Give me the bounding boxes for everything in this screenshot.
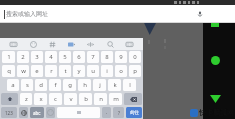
staticText: d bbox=[39, 81, 43, 89]
staticText: h bbox=[83, 81, 87, 89]
button[interactable]: Keyboard layout bbox=[8, 39, 19, 50]
staticText: l bbox=[129, 81, 131, 89]
staticText: s bbox=[26, 81, 29, 89]
button[interactable]: 123 bbox=[1, 107, 17, 118]
button[interactable]: Emoji bbox=[46, 107, 55, 118]
staticText: i bbox=[106, 67, 108, 75]
staticText: 0 bbox=[133, 53, 137, 61]
staticText: 7 bbox=[91, 53, 95, 61]
staticText: c bbox=[54, 95, 57, 103]
button[interactable]: Backspace bbox=[124, 93, 142, 105]
button[interactable]: Voice bbox=[85, 39, 96, 50]
button[interactable]: Space bbox=[57, 107, 100, 118]
staticText: . bbox=[106, 109, 108, 116]
button[interactable]: 7 bbox=[87, 51, 99, 63]
button[interactable]: s bbox=[21, 79, 33, 91]
staticText: r bbox=[50, 67, 53, 75]
staticText: 前往 bbox=[130, 110, 139, 116]
button[interactable]: o bbox=[115, 65, 127, 77]
button[interactable]: b bbox=[79, 93, 92, 105]
button[interactable]: h bbox=[78, 79, 91, 91]
button[interactable]: u bbox=[87, 65, 99, 77]
button[interactable]: 0 bbox=[129, 51, 141, 63]
staticText: e bbox=[35, 67, 39, 75]
staticText: 123 bbox=[5, 110, 13, 116]
button[interactable]: l bbox=[123, 79, 136, 91]
staticText: 搜索或输入网址 bbox=[6, 10, 48, 18]
button[interactable]: Voice search bbox=[195, 9, 205, 19]
button[interactable]: 搜索或输入网址 bbox=[0, 5, 235, 23]
button[interactable]: Shift bbox=[1, 93, 18, 105]
staticText: 快卡脑孤网 bbox=[199, 108, 234, 117]
button[interactable]: 1 bbox=[2, 51, 15, 63]
button[interactable]: Theme bbox=[66, 39, 77, 50]
staticText: g bbox=[68, 81, 72, 89]
staticText: m bbox=[113, 95, 119, 103]
button[interactable]: m bbox=[109, 93, 122, 105]
staticText: f bbox=[54, 81, 57, 89]
staticText: n bbox=[99, 95, 103, 103]
staticText: abc bbox=[33, 110, 41, 116]
staticText: k bbox=[113, 81, 117, 89]
staticText: u bbox=[91, 67, 95, 75]
staticText: 4 bbox=[49, 53, 53, 61]
button[interactable]: y bbox=[73, 65, 85, 77]
staticText: a bbox=[11, 81, 15, 89]
button[interactable]: Symbols bbox=[47, 39, 58, 50]
button[interactable]: q bbox=[2, 65, 15, 77]
staticText: v bbox=[69, 95, 73, 103]
staticText: 9 bbox=[119, 53, 123, 61]
button[interactable]: 2 bbox=[17, 51, 29, 63]
staticText: 6 bbox=[77, 53, 81, 61]
button[interactable]: More bbox=[124, 39, 135, 50]
button[interactable]: g bbox=[63, 79, 76, 91]
button[interactable]: v bbox=[64, 93, 77, 105]
staticText: 2 bbox=[21, 53, 25, 61]
button[interactable]: x bbox=[34, 93, 47, 105]
staticText: b bbox=[84, 95, 88, 103]
staticText: ? bbox=[118, 110, 120, 116]
button[interactable]: c bbox=[49, 93, 62, 105]
staticText: 5 bbox=[63, 53, 67, 61]
staticText: 3 bbox=[35, 53, 39, 61]
staticText: x bbox=[39, 95, 43, 103]
button[interactable]: ABC mode bbox=[30, 107, 44, 118]
staticText: 1 bbox=[7, 53, 11, 61]
staticText: 8 bbox=[105, 53, 109, 61]
button[interactable]: Symbols bbox=[113, 107, 124, 118]
button[interactable]: z bbox=[20, 93, 32, 105]
staticText: p bbox=[133, 67, 137, 75]
button[interactable]: e bbox=[31, 65, 43, 77]
button[interactable]: 9 bbox=[115, 51, 127, 63]
button[interactable]: Period bbox=[102, 107, 111, 118]
button[interactable]: k bbox=[108, 79, 121, 91]
button[interactable]: p bbox=[129, 65, 141, 77]
staticText: o bbox=[119, 67, 123, 75]
button[interactable]: a bbox=[7, 79, 19, 91]
button[interactable]: 6 bbox=[73, 51, 85, 63]
button[interactable]: 3 bbox=[31, 51, 43, 63]
button[interactable]: r bbox=[45, 65, 57, 77]
button[interactable]: 5 bbox=[59, 51, 71, 63]
button[interactable]: t bbox=[59, 65, 71, 77]
button[interactable]: i bbox=[101, 65, 113, 77]
button[interactable]: f bbox=[49, 79, 61, 91]
staticText: z bbox=[25, 95, 28, 103]
button[interactable]: 前往 bbox=[126, 107, 142, 118]
button[interactable]: Emoji bbox=[28, 39, 39, 50]
staticText: y bbox=[77, 67, 81, 75]
staticText: t bbox=[64, 67, 67, 75]
staticText: q bbox=[7, 67, 11, 75]
button[interactable]: 8 bbox=[101, 51, 113, 63]
staticText: j bbox=[99, 81, 101, 89]
button[interactable]: n bbox=[94, 93, 107, 105]
button[interactable]: Search bbox=[105, 39, 116, 50]
button[interactable]: Switch language bbox=[19, 107, 28, 118]
staticText: w bbox=[21, 67, 26, 75]
button[interactable]: w bbox=[17, 65, 29, 77]
button[interactable]: d bbox=[35, 79, 47, 91]
button[interactable]: 4 bbox=[45, 51, 57, 63]
button[interactable]: j bbox=[93, 79, 106, 91]
